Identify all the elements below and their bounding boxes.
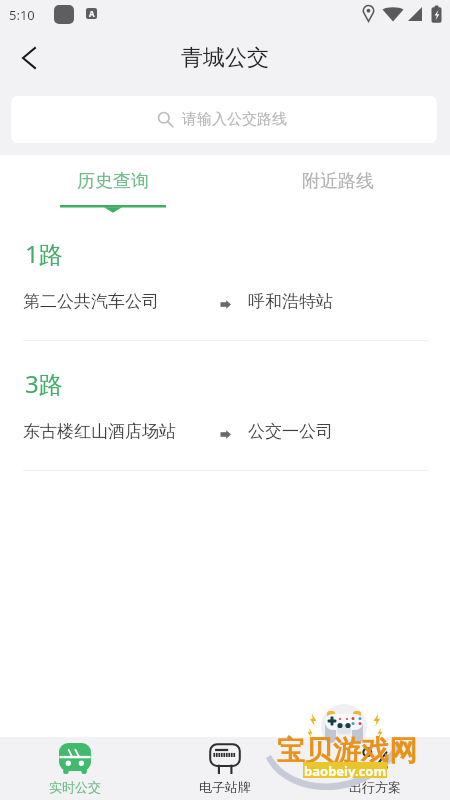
- staticText: 第二公共汽车公司: [23, 291, 159, 312]
- button[interactable]: 3路: [0, 348, 450, 478]
- button[interactable]: 附近路线: [225, 155, 450, 218]
- button[interactable]: 实时公交: [0, 737, 150, 800]
- button[interactable]: 电子站牌: [150, 737, 300, 800]
- button[interactable]: 出行方案: [300, 737, 450, 800]
- button[interactable]: 请输入公交路线: [11, 96, 437, 143]
- staticText: 1路: [25, 237, 63, 270]
- staticText: 5:10: [9, 6, 35, 24]
- button[interactable]: 历史查询: [0, 155, 225, 218]
- staticText: 3路: [25, 367, 63, 400]
- staticText: 实时公交: [49, 779, 101, 795]
- button[interactable]: Back: [6, 28, 52, 88]
- staticText: 历史查询: [77, 170, 149, 193]
- staticText: 宝贝游戏网: [277, 733, 417, 768]
- button[interactable]: 1路: [0, 218, 450, 348]
- staticText: 公交一公司: [248, 421, 333, 442]
- staticText: baobeiy.com: [304, 762, 387, 778]
- staticText: 出行方案: [349, 779, 401, 795]
- staticText: 呼和浩特站: [248, 291, 333, 312]
- staticText: 电子站牌: [199, 779, 251, 795]
- staticText: A: [89, 8, 95, 19]
- staticText: 东古楼红山酒店场站: [23, 421, 176, 442]
- staticText: 附近路线: [302, 170, 374, 193]
- staticText: 青城公交: [181, 44, 269, 72]
- staticText: 请输入公交路线: [182, 110, 287, 129]
